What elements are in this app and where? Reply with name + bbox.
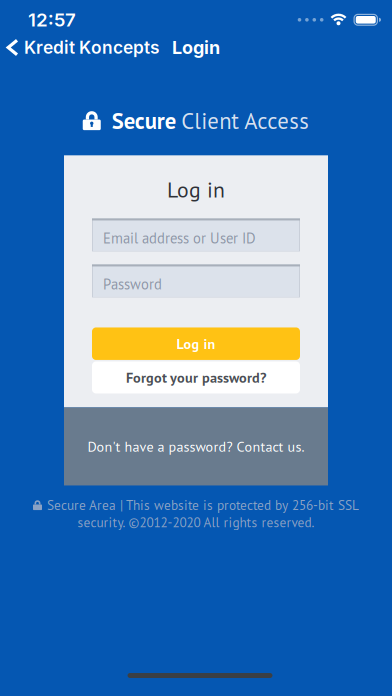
button[interactable]: Password (92, 264, 300, 297)
staticText: Forgot your password? (126, 368, 266, 387)
staticText: Client Access (181, 106, 309, 135)
staticText: Login (172, 37, 220, 58)
staticText: 12:57 (28, 8, 76, 31)
staticText: Log in (167, 175, 225, 203)
staticText: Secure (112, 106, 177, 135)
staticText: security. ©2012-2020 All rights reserved… (77, 514, 314, 531)
button[interactable]: Back (0, 37, 160, 58)
staticText: Password (103, 274, 162, 293)
staticText: Secure Area | This website is protected … (47, 496, 359, 514)
staticText: Email address or User ID (103, 228, 256, 247)
button[interactable]: Log in (92, 327, 300, 360)
staticText: Kredit Koncepts (24, 37, 160, 58)
button[interactable]: Forgot your password? (92, 361, 300, 393)
staticText: Log in (176, 335, 215, 353)
button[interactable]: Email address or User ID (92, 218, 300, 251)
button[interactable]: Don't have a password? Contact us. (64, 407, 328, 485)
staticText: Don't have a password? Contact us. (87, 437, 304, 456)
